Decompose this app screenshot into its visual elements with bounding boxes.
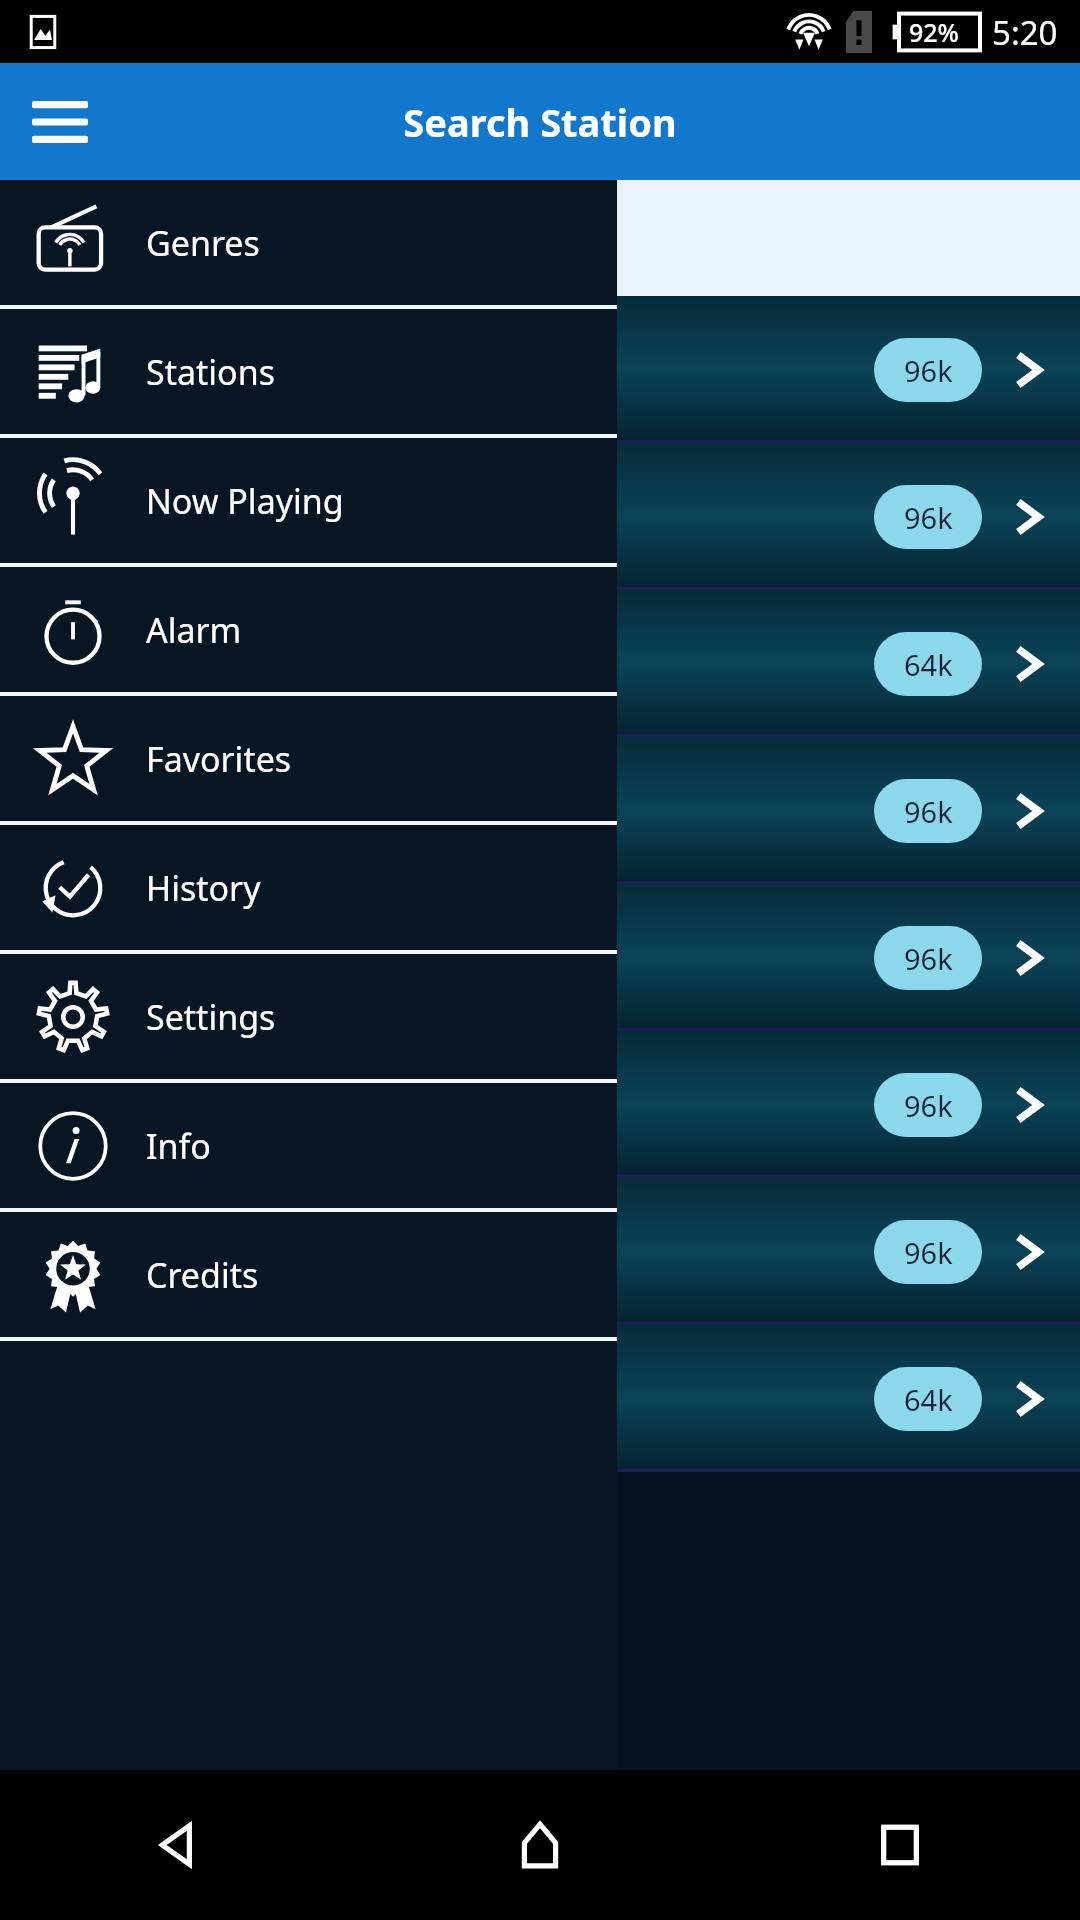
button[interactable]: Favorites <box>0 696 617 821</box>
button[interactable]: Home <box>360 1770 720 1920</box>
staticText: Info <box>146 1123 211 1169</box>
button[interactable]: Credits <box>0 1212 617 1337</box>
button[interactable]: Alarm <box>0 567 617 692</box>
button[interactable]: 64k <box>0 1325 1080 1472</box>
staticText: History <box>146 865 261 911</box>
button[interactable]: Now Playing <box>0 438 617 563</box>
button[interactable]: Open navigation drawer <box>20 82 100 162</box>
staticText: 96k <box>904 939 953 978</box>
button[interactable]: Settings <box>0 954 617 1079</box>
button[interactable]: 96k <box>0 884 1080 1031</box>
button[interactable]: Info <box>0 1083 617 1208</box>
button[interactable]: 96k <box>0 1031 1080 1178</box>
staticText: 96k <box>904 792 953 831</box>
staticText: 96k <box>904 498 953 537</box>
button[interactable]: 96k <box>0 443 1080 590</box>
staticText: 96k <box>904 1086 953 1125</box>
button[interactable]: Back <box>0 1770 360 1920</box>
button[interactable]: 64k <box>0 590 1080 737</box>
staticText: 96k <box>904 351 953 390</box>
button[interactable]: 96k <box>0 296 1080 443</box>
button[interactable]: 96k <box>0 1178 1080 1325</box>
staticText: Genres <box>146 220 260 266</box>
staticText: Search Station <box>403 96 677 148</box>
button[interactable]: Genres <box>0 180 617 305</box>
staticText: 92% <box>909 15 959 49</box>
button[interactable]: Stations <box>0 309 617 434</box>
staticText: Settings <box>146 994 276 1040</box>
staticText: Credits <box>146 1252 259 1298</box>
staticText: 64k <box>904 645 953 684</box>
staticText: 5:20 <box>992 10 1058 55</box>
button[interactable]: Recent apps <box>720 1770 1080 1920</box>
button[interactable]: History <box>0 825 617 950</box>
staticText: Favorites <box>146 736 292 782</box>
staticText: Now Playing <box>146 478 344 524</box>
button[interactable]: 96k <box>0 737 1080 884</box>
staticText: 64k <box>904 1380 953 1419</box>
staticText: 96k <box>904 1233 953 1272</box>
staticText: Stations <box>146 349 275 395</box>
staticText: Alarm <box>146 607 242 653</box>
